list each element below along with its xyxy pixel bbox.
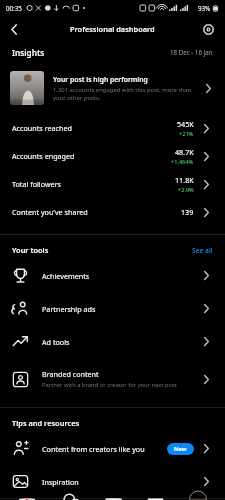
button[interactable]: Back — [0, 16, 26, 42]
staticText: Tips and resources — [12, 418, 80, 428]
button[interactable]: Ad tools — [0, 325, 225, 358]
staticText: Inspiration — [42, 477, 79, 487]
staticText: Professional dashboard — [70, 24, 155, 34]
staticText: Insights — [12, 47, 170, 58]
staticText: Content you've shared — [12, 207, 181, 217]
staticText: Ad tools — [42, 337, 70, 347]
button[interactable]: Total followers — [0, 170, 225, 198]
staticText: See all — [192, 246, 213, 255]
staticText: New — [174, 445, 187, 453]
staticText: 93% — [198, 4, 211, 12]
staticText: 11.8K — [175, 175, 194, 185]
staticText: Total followers — [12, 179, 175, 189]
staticText: Your post is high performing — [53, 75, 148, 84]
button[interactable]: Settings — [199, 20, 217, 38]
button[interactable]: Inspiration — [0, 465, 225, 498]
button[interactable]: Accounts reached — [0, 114, 225, 142]
staticText: Accounts reached — [12, 123, 177, 133]
staticText: 18 Dec - 16 Jan — [170, 48, 213, 56]
staticText: +1,464% — [171, 158, 194, 166]
staticText: 00:35 — [6, 4, 22, 12]
staticText: Achievements — [42, 271, 90, 281]
button[interactable]: Create — [97, 499, 129, 500]
staticText: Branded content — [42, 369, 99, 379]
staticText: Your tools — [12, 245, 192, 255]
staticText: 545K — [177, 119, 194, 129]
button[interactable]: Your post is high performing — [0, 67, 225, 109]
staticText: 1,301 accounts engaged with this post, m… — [53, 86, 197, 102]
button[interactable]: Partnership ads — [0, 292, 225, 325]
staticText: 139 — [181, 207, 194, 217]
button[interactable]: Content from creators like you — [0, 432, 225, 465]
staticText: Content from creators like you — [42, 444, 145, 454]
button[interactable]: Branded content — [0, 358, 225, 400]
button[interactable]: Search — [54, 499, 86, 500]
staticText: Accounts engaged — [12, 151, 171, 161]
button[interactable]: Content you've shared — [0, 198, 225, 226]
staticText: 48.7K — [175, 147, 194, 157]
button[interactable]: See all — [192, 246, 213, 255]
button[interactable]: Reels — [139, 499, 171, 500]
staticText: Partnership ads — [42, 304, 96, 314]
button[interactable]: Home — [11, 499, 43, 500]
staticText: +2.9% — [178, 186, 194, 194]
button[interactable]: Accounts engaged — [0, 142, 225, 170]
button[interactable]: Profile — [182, 499, 214, 500]
button[interactable]: Achievements — [0, 259, 225, 292]
staticText: Partner with a brand or creator for your… — [42, 381, 177, 389]
staticText: +21% — [179, 130, 194, 138]
